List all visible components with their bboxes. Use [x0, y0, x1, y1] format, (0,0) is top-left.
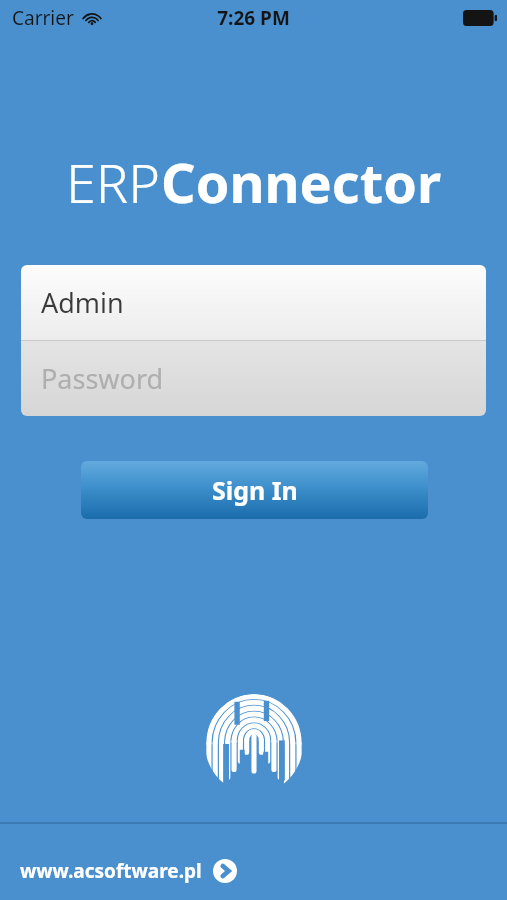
button[interactable]: Fingerprint sign in: [204, 694, 304, 794]
button[interactable]: Sign In: [81, 461, 428, 519]
staticText: 7:26 PM: [217, 5, 290, 31]
staticText: Admin: [41, 284, 124, 321]
staticText: ERP: [66, 145, 161, 219]
staticText: Connector: [161, 145, 442, 219]
other: Open website: [213, 859, 237, 883]
staticText: Carrier: [12, 5, 74, 31]
staticText: Sign In: [212, 473, 298, 507]
staticText: Password: [41, 360, 164, 397]
button[interactable]: Admin: [21, 265, 486, 340]
button[interactable]: www.acsoftware.pl: [20, 858, 237, 884]
button[interactable]: Password: [21, 341, 486, 416]
staticText: www.acsoftware.pl: [20, 858, 202, 884]
